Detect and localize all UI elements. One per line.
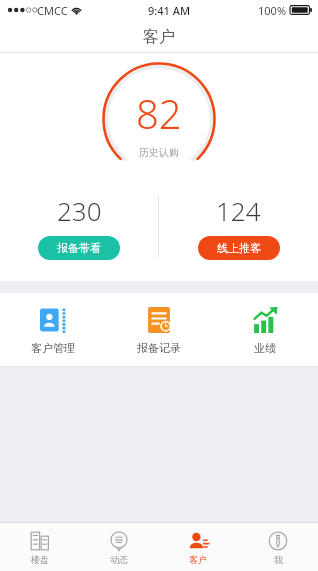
- staticText: 我: [274, 554, 283, 565]
- staticText: 82: [136, 86, 182, 140]
- staticText: 历史认购: [139, 146, 179, 159]
- button[interactable]: Feed: [79, 523, 158, 571]
- staticText: CMCC: [37, 3, 68, 18]
- other: Report records: [146, 307, 172, 333]
- staticText: 报备记录: [137, 341, 181, 355]
- button[interactable]: Report records: [106, 293, 212, 367]
- staticText: 业绩: [254, 341, 276, 355]
- staticText: 客户: [143, 27, 175, 47]
- other: Feed: [109, 531, 129, 551]
- button[interactable]: Customer management: [0, 293, 106, 367]
- staticText: 动态: [110, 554, 128, 565]
- staticText: 9:41 AM: [148, 3, 191, 18]
- staticText: 100%: [258, 3, 287, 18]
- staticText: 线上推客: [217, 241, 261, 255]
- button[interactable]: 线上推客: [198, 236, 280, 260]
- other: Performance: [252, 307, 278, 333]
- other: Me: [268, 531, 288, 551]
- other: Properties: [30, 531, 50, 551]
- staticText: 124: [216, 193, 261, 228]
- button[interactable]: Properties: [0, 523, 79, 571]
- button[interactable]: Customers: [158, 523, 238, 571]
- staticText: 客户: [189, 554, 207, 565]
- other: Customers: [188, 531, 208, 551]
- button[interactable]: Me: [238, 523, 318, 571]
- button[interactable]: Performance: [212, 293, 318, 367]
- button[interactable]: 报备带看: [38, 236, 120, 260]
- staticText: 报备带看: [57, 241, 101, 255]
- other: Customer management: [40, 307, 66, 333]
- staticText: 楼盘: [31, 554, 49, 565]
- staticText: 客户管理: [31, 341, 75, 355]
- staticText: 230: [57, 193, 102, 228]
